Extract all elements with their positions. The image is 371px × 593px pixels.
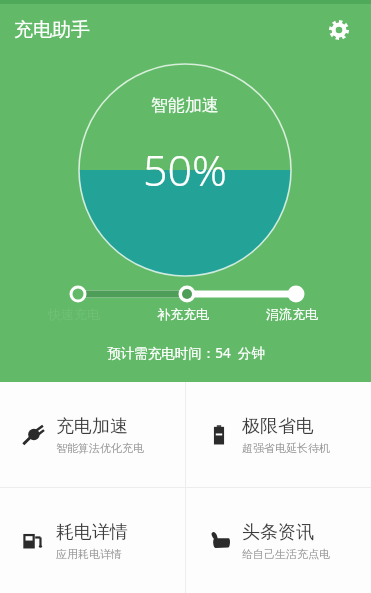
staticText: 充电助手 — [14, 18, 90, 42]
button[interactable]: 头条资讯 — [186, 488, 371, 593]
button[interactable]: 耗电详情 — [0, 488, 185, 593]
staticText: 智能算法优化充电 — [56, 441, 144, 455]
button[interactable]: 充电加速 — [0, 382, 185, 487]
staticText: 耗电详情 — [56, 521, 128, 544]
staticText: 应用耗电详情 — [56, 547, 122, 561]
button[interactable]: Settings — [319, 10, 359, 50]
staticText: 充电加速 — [56, 415, 128, 438]
staticText: 补充充电 — [157, 306, 209, 322]
staticText: 智能加速 — [151, 95, 219, 116]
staticText: 极限省电 — [242, 415, 314, 438]
staticText: 50% — [143, 140, 228, 199]
staticText: 预计需充电时间：54 分钟 — [107, 344, 265, 362]
staticText: 给自己生活充点电 — [242, 547, 330, 561]
staticText: 涓流充电 — [266, 306, 318, 322]
button[interactable]: 极限省电 — [186, 382, 371, 487]
staticText: 快速充电 — [48, 306, 100, 322]
staticText: 超强省电延长待机 — [242, 441, 330, 455]
staticText: 头条资讯 — [242, 521, 314, 544]
